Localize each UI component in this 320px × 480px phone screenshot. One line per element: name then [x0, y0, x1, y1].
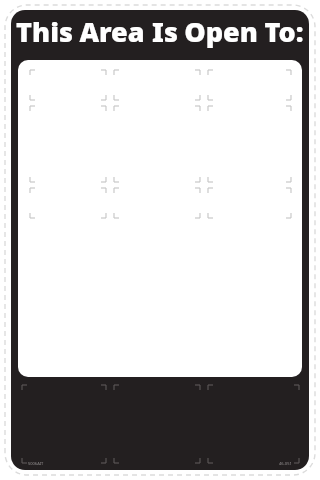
button[interactable]: This: [16, 10, 304, 52]
staticText: Is: [152, 13, 178, 50]
staticText: 46-051: [279, 461, 292, 466]
staticText: 5006AIT: [28, 461, 44, 466]
staticText: This: [16, 13, 73, 50]
button[interactable]: Blank write-on area: [18, 60, 302, 377]
staticText: Open: [184, 13, 258, 50]
button[interactable]: This Area Is Open To sign: [11, 10, 309, 470]
staticText: To:: [264, 13, 304, 50]
staticText: Area: [79, 13, 145, 50]
